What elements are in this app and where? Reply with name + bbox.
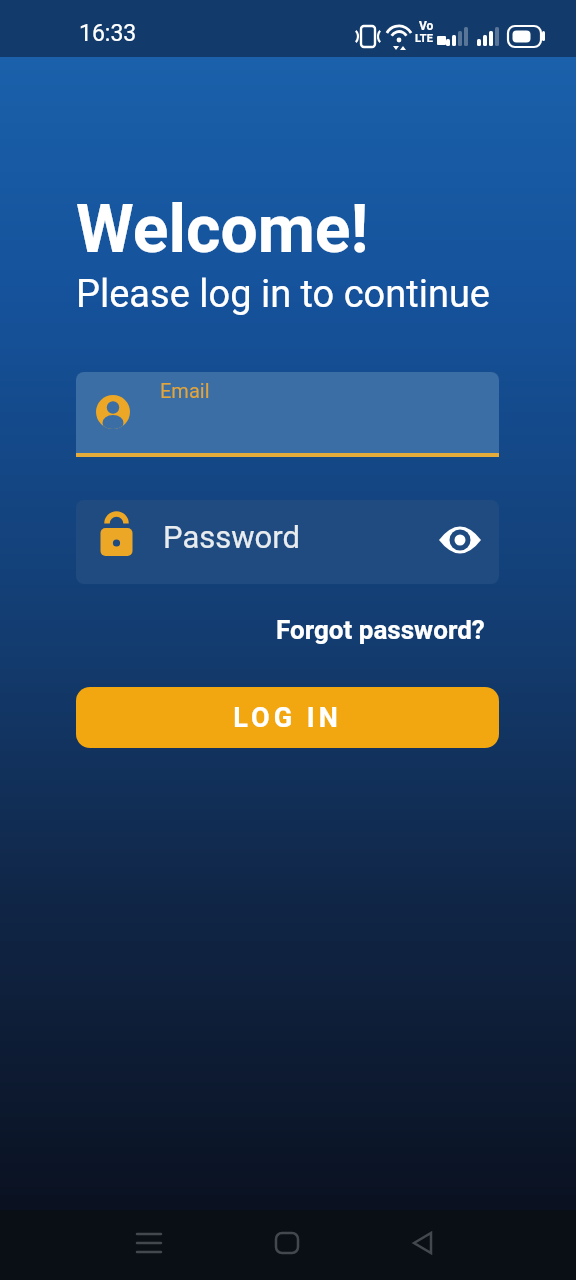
staticText: Forgot password? bbox=[276, 615, 485, 645]
staticText: 16:33 bbox=[79, 20, 137, 47]
staticText: Email bbox=[160, 379, 210, 402]
staticText: LOG IN bbox=[233, 702, 342, 734]
staticText: LTE bbox=[415, 32, 433, 45]
staticText: Vo bbox=[419, 19, 434, 33]
staticText: Welcome! bbox=[76, 191, 369, 268]
staticText: Password bbox=[163, 519, 300, 555]
staticText: Please log in to continue bbox=[76, 272, 491, 317]
